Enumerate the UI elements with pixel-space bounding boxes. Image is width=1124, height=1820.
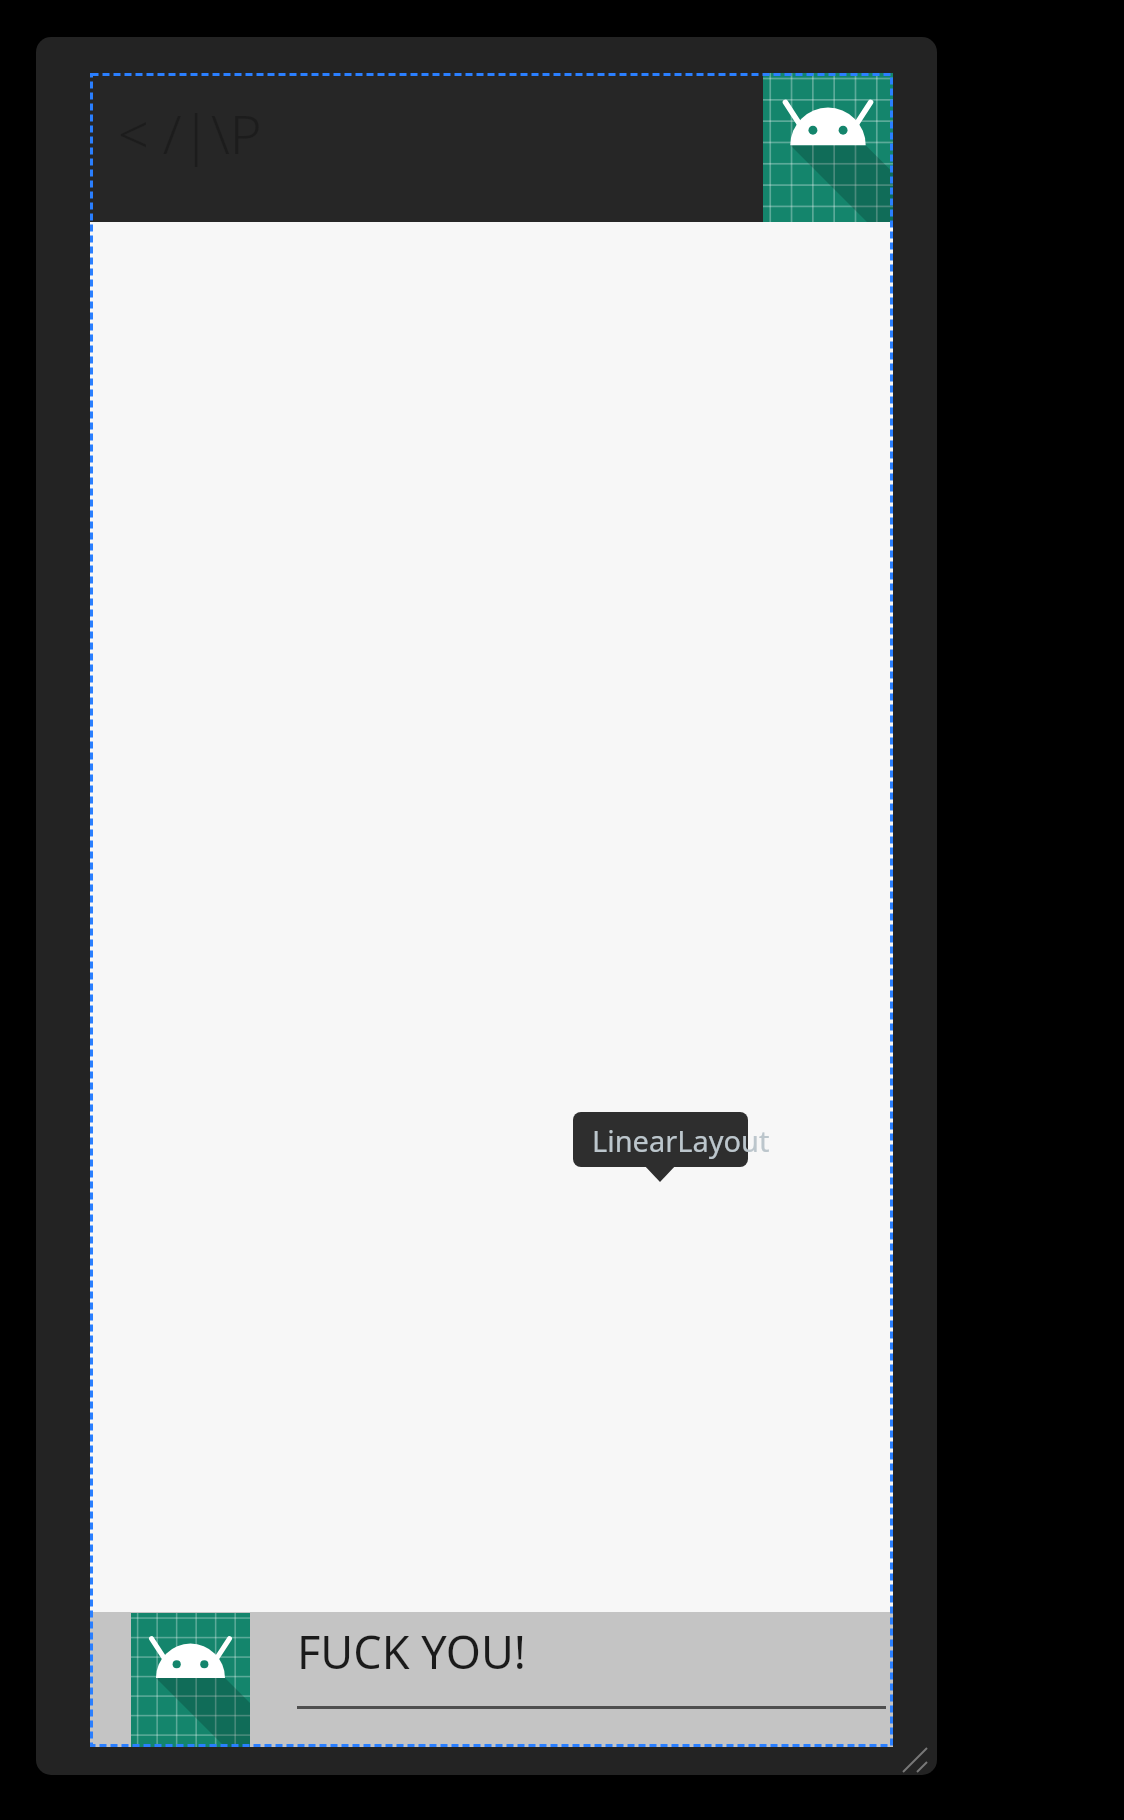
staticText: FUCK YOU!: [297, 1621, 526, 1682]
staticText: LinearLayout: [592, 1121, 770, 1160]
button[interactable]: App icon: [763, 73, 893, 222]
button[interactable]: Android logo: [131, 1613, 250, 1747]
button[interactable]: FUCK YOU! text field: [297, 1612, 886, 1748]
button[interactable]: Toolbar: [90, 73, 893, 222]
